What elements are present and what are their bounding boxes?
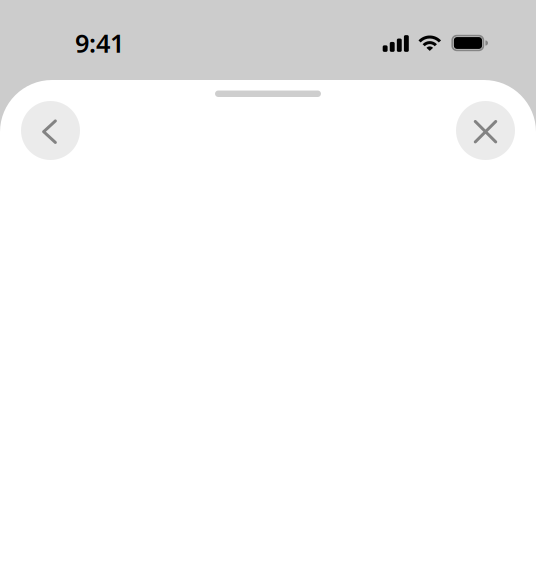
staticText: 9:41 (75, 26, 124, 60)
button[interactable]: Close (456, 101, 515, 160)
button[interactable]: Back (21, 101, 80, 160)
